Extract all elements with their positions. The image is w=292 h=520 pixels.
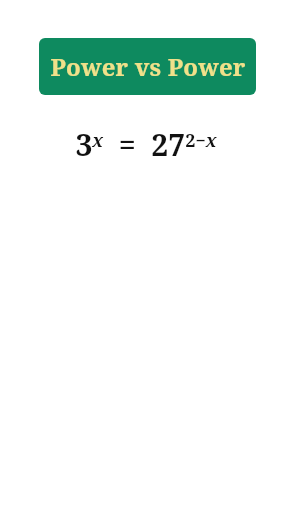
staticText: Power vs Power xyxy=(50,50,246,83)
staticText: 3x = 272−x xyxy=(75,124,217,165)
button[interactable]: Power vs Power xyxy=(39,38,256,95)
